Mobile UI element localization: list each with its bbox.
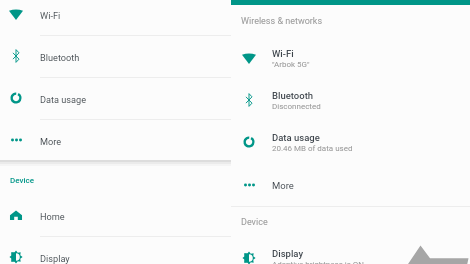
staticText: 20.46 MB of data used [272, 144, 353, 153]
button[interactable]: Display [0, 236, 231, 264]
staticText: Wi-Fi [272, 48, 294, 59]
button[interactable]: Bluetooth [231, 79, 470, 121]
button[interactable]: Wi-Fi [231, 37, 470, 79]
staticText: Adaptive brightness is ON [272, 260, 365, 264]
staticText: Display [272, 248, 304, 259]
staticText: Device [241, 217, 268, 228]
button[interactable]: More [231, 164, 470, 206]
button[interactable]: Home [0, 194, 231, 236]
button[interactable]: Bluetooth [0, 35, 231, 77]
staticText: Wireless & networks [241, 16, 323, 27]
staticText: Data usage [272, 132, 320, 143]
staticText: Bluetooth [272, 90, 314, 101]
staticText: Data usage [40, 94, 87, 105]
staticText: Disconnected [272, 102, 321, 111]
staticText: Display [40, 253, 70, 264]
staticText: Bluetooth [40, 52, 80, 63]
staticText: More [272, 180, 294, 191]
button[interactable]: Wi-Fi [0, 0, 231, 35]
staticText: Device [10, 176, 34, 185]
staticText: More [40, 136, 62, 147]
staticText: Home [40, 211, 65, 222]
staticText: Wi-Fi [40, 10, 61, 21]
button[interactable]: More [0, 119, 231, 161]
staticText: "Arbok 5G" [272, 60, 310, 69]
button[interactable]: Data usage [0, 77, 231, 119]
button[interactable]: Display [231, 237, 470, 264]
button[interactable]: Data usage [231, 121, 470, 163]
